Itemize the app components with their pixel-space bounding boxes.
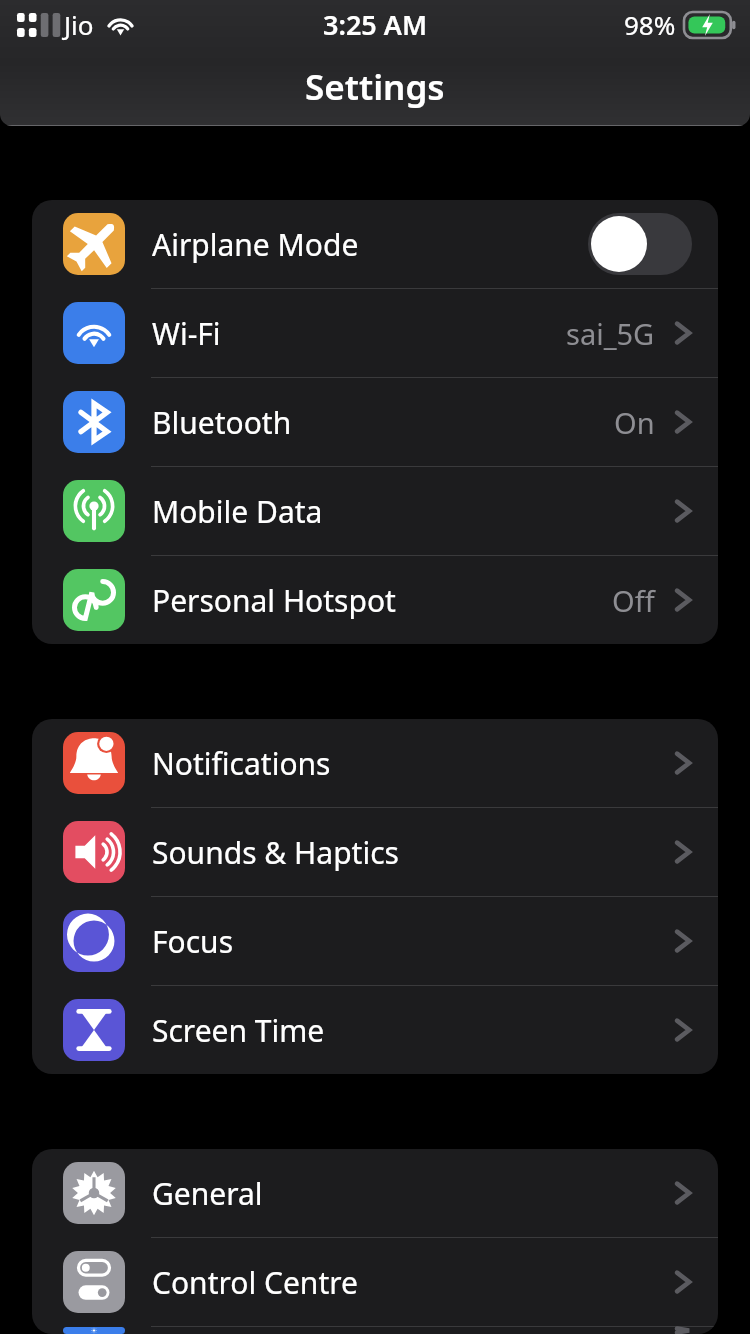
staticText: On	[614, 403, 655, 442]
staticText: Control Centre	[152, 1262, 358, 1303]
button[interactable]: Display & Brightness	[32, 1327, 718, 1334]
staticText: Sounds & Haptics	[152, 832, 399, 873]
staticText: Screen Time	[152, 1010, 325, 1051]
staticText: Settings	[305, 63, 445, 111]
staticText: Airplane Mode	[152, 224, 359, 265]
staticText: Focus	[152, 921, 234, 962]
staticText: Notifications	[152, 743, 331, 784]
button[interactable]: Airplane Mode	[32, 200, 718, 288]
staticText: 98%	[624, 7, 676, 42]
button[interactable]: General	[32, 1149, 718, 1237]
staticText: 3:25 AM	[323, 6, 428, 43]
button[interactable]: Screen Time	[32, 986, 718, 1074]
button[interactable]: Mobile Data	[32, 467, 718, 555]
button[interactable]: Sounds & Haptics	[32, 808, 718, 896]
staticText: Bluetooth	[152, 402, 292, 443]
button[interactable]: Airplane Mode toggle	[588, 213, 692, 275]
button[interactable]: Notifications	[32, 719, 718, 807]
staticText: sai_5G	[566, 314, 655, 353]
button[interactable]: Control Centre	[32, 1238, 718, 1326]
button[interactable]: Wi-Fi	[32, 289, 718, 377]
staticText: Personal Hotspot	[152, 580, 396, 621]
button[interactable]: Focus	[32, 897, 718, 985]
staticText: Off	[612, 581, 655, 620]
button[interactable]: Personal Hotspot	[32, 556, 718, 644]
staticText: General	[152, 1173, 263, 1214]
staticText: Wi-Fi	[152, 313, 221, 354]
button[interactable]: Bluetooth	[32, 378, 718, 466]
staticText: Mobile Data	[152, 491, 323, 532]
staticText: Jio	[64, 7, 94, 42]
